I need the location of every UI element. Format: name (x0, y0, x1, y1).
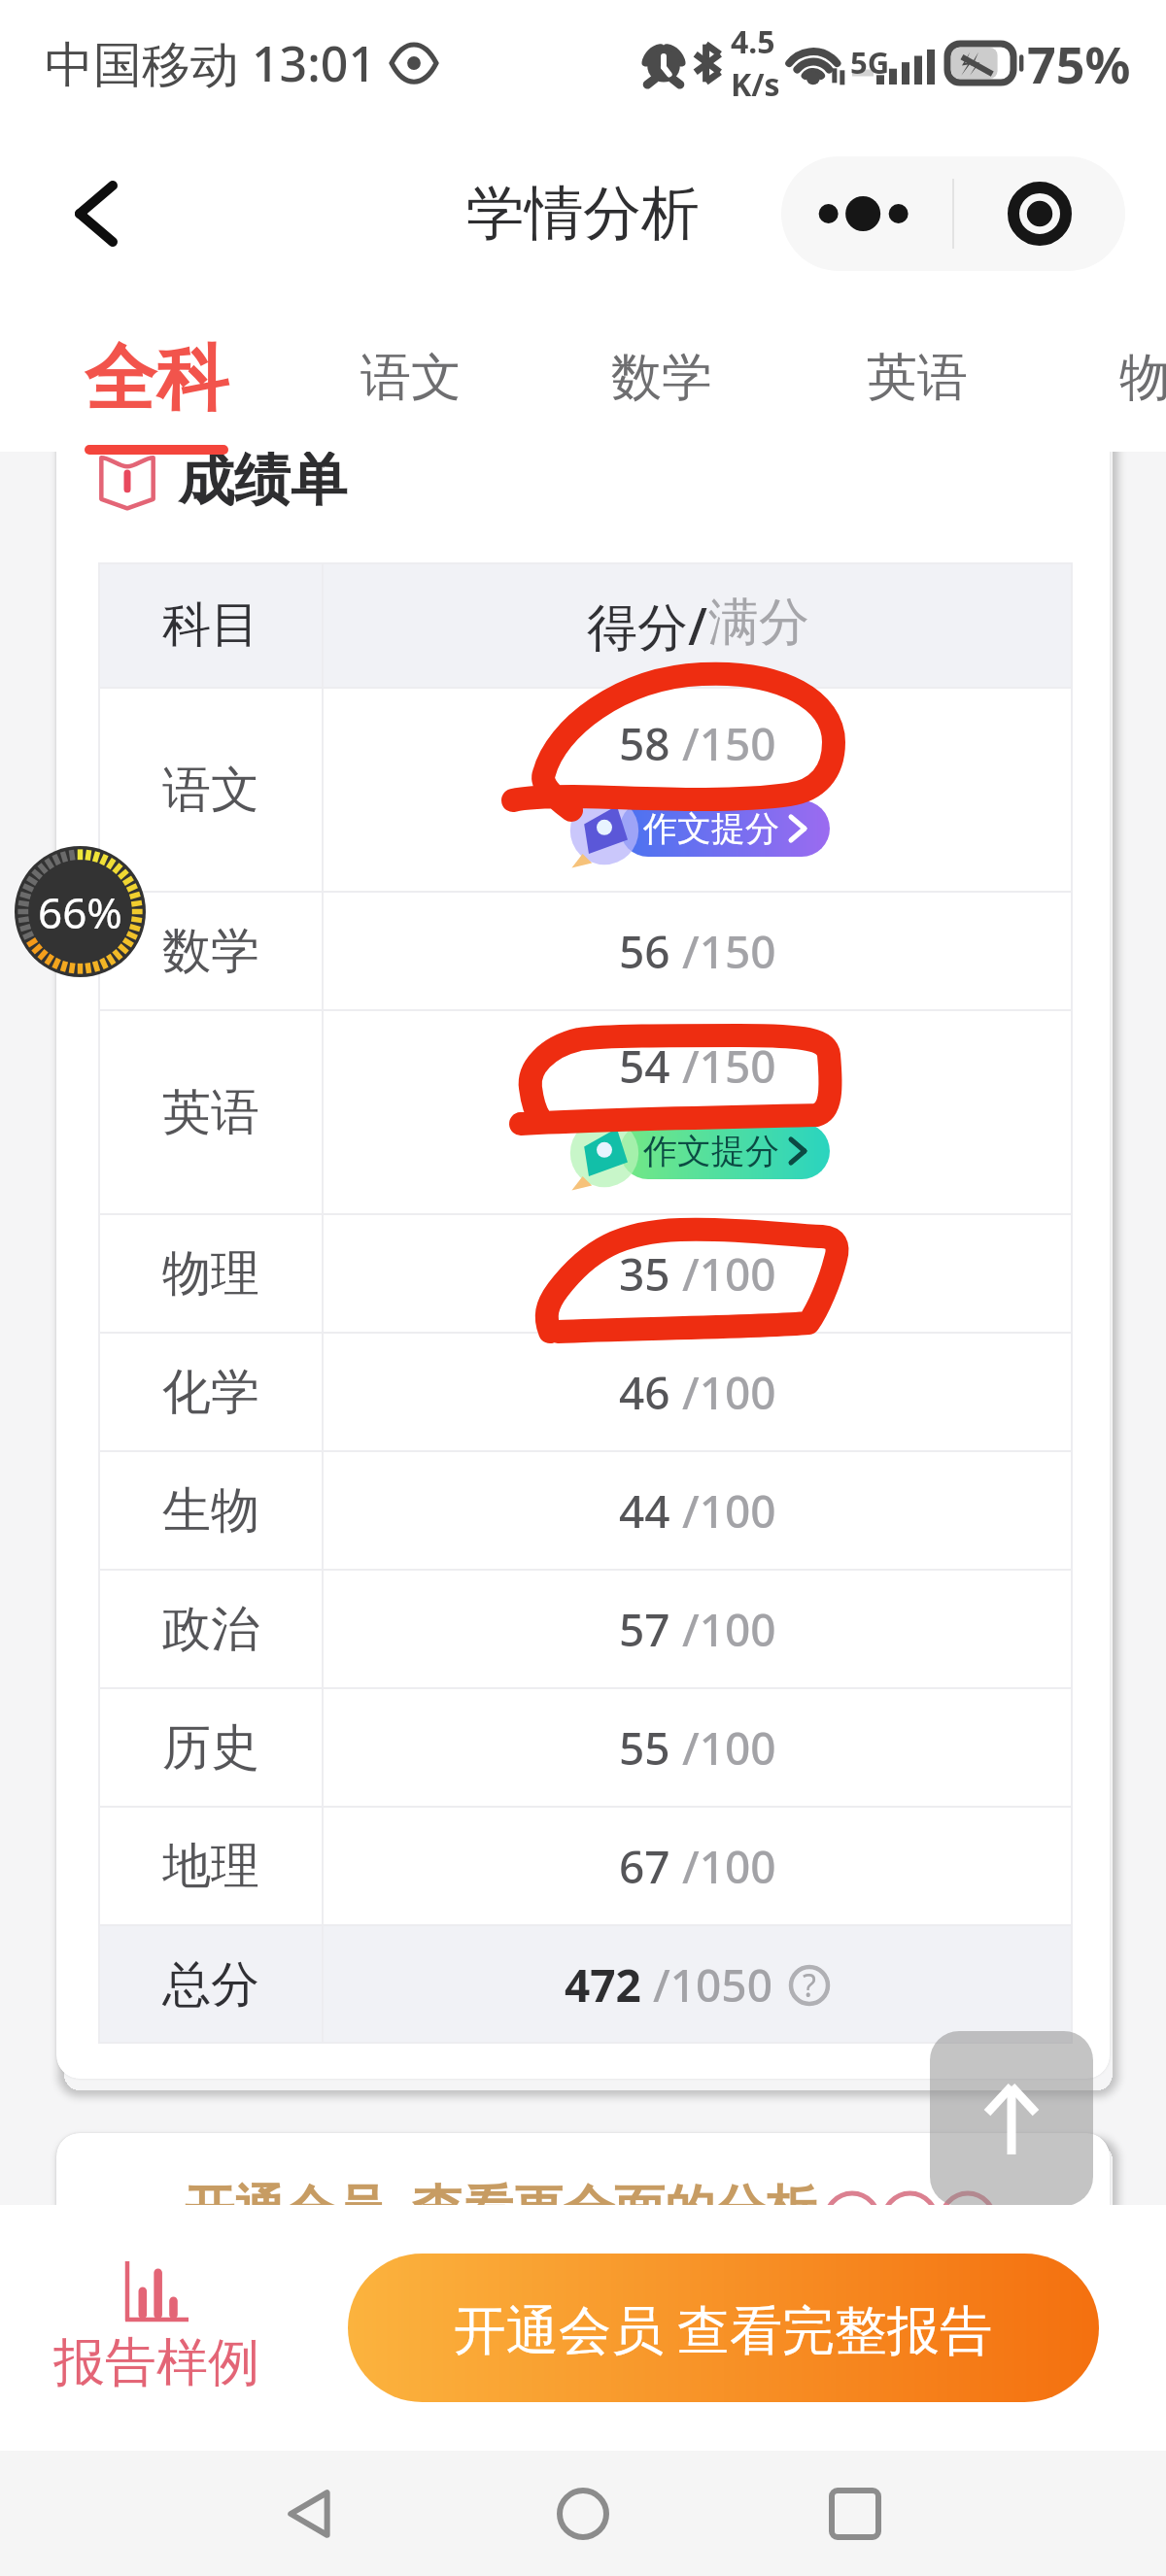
button[interactable]: Back (262, 2465, 360, 2562)
button[interactable]: Scroll to top (930, 2031, 1093, 2205)
staticText (670, 1035, 682, 1097)
staticText: 56 (619, 921, 670, 982)
staticText: 35 (619, 1243, 670, 1305)
staticText: /1050 (653, 1954, 772, 2016)
staticText: /100 (682, 1480, 776, 1542)
staticText: /100 (682, 1836, 776, 1897)
staticText: 作文提分 (643, 1130, 779, 1172)
button[interactable]: 数学 (589, 346, 735, 462)
button[interactable]: 作文提分 (620, 1123, 830, 1179)
staticText: 得分/ (587, 591, 708, 660)
staticText: 地理 (162, 1836, 259, 1897)
staticText: 55 (619, 1717, 670, 1779)
staticText: 66% (38, 883, 122, 941)
staticText: 生物 (162, 1480, 259, 1542)
staticText: 语文 (162, 760, 259, 821)
button[interactable]: 全科 (78, 301, 235, 452)
staticText: 语文 (360, 346, 462, 410)
button[interactable]: 报告样例 (40, 2261, 273, 2395)
staticText: 46 (619, 1362, 670, 1423)
staticText: 全科 (85, 334, 228, 424)
staticText: /100 (682, 1243, 776, 1305)
staticText: 5G (850, 42, 890, 83)
staticText: 75% (1027, 29, 1131, 98)
staticText: 67 (619, 1836, 670, 1897)
staticText: 472 (565, 1954, 641, 2016)
button[interactable]: 作文提分 (620, 800, 830, 857)
staticText: 化学 (162, 1362, 259, 1423)
button[interactable]: More options (781, 156, 952, 271)
staticText: 学情分析 (466, 177, 700, 251)
staticText: 中国移动 13:01 (45, 30, 376, 96)
staticText: /100 (682, 1599, 776, 1660)
staticText: 数学 (162, 921, 259, 982)
staticText: 开通会员 查看更全面的分析 (184, 2172, 817, 2205)
button[interactable]: 物理 (1097, 346, 1166, 462)
staticText: 成绩单 (178, 452, 347, 516)
staticText: 报告样例 (53, 2330, 259, 2395)
staticText: 开通会员 查看完整报告 (454, 2292, 993, 2364)
staticText: K/s (731, 63, 780, 106)
staticText: 作文提分 (643, 807, 779, 850)
staticText: 44 (619, 1480, 670, 1542)
button[interactable]: 语文 (338, 346, 484, 462)
button[interactable]: Back (39, 157, 152, 270)
button[interactable]: Home (534, 2465, 632, 2562)
button[interactable]: Close mini program (954, 156, 1125, 271)
staticText: 英语 (867, 346, 968, 410)
staticText: 4.5 (731, 20, 775, 63)
staticText: /100 (682, 1362, 776, 1423)
button[interactable]: 开通会员 查看完整报告 (348, 2254, 1099, 2402)
staticText: /150 (682, 1035, 776, 1097)
staticText: 57 (619, 1599, 670, 1660)
staticText: 英语 (162, 1082, 259, 1143)
button[interactable]: Recent apps (806, 2465, 904, 2562)
button[interactable]: 英语 (844, 346, 990, 462)
staticText: 物理 (162, 1243, 259, 1305)
staticText: 总分 (162, 1954, 259, 2016)
staticText: 历史 (162, 1717, 259, 1779)
staticText: /150 (682, 921, 776, 982)
staticText: 满分 (708, 591, 809, 655)
staticText: 58 (619, 713, 670, 774)
staticText: 54 (619, 1035, 670, 1097)
staticText: /150 (682, 713, 776, 774)
staticText: /100 (682, 1717, 776, 1779)
staticText: 政治 (162, 1599, 259, 1660)
staticText: 物理 (1119, 346, 1166, 410)
staticText: 数学 (611, 346, 712, 410)
staticText: ? (803, 1964, 816, 2007)
staticText: 科目 (162, 594, 259, 656)
